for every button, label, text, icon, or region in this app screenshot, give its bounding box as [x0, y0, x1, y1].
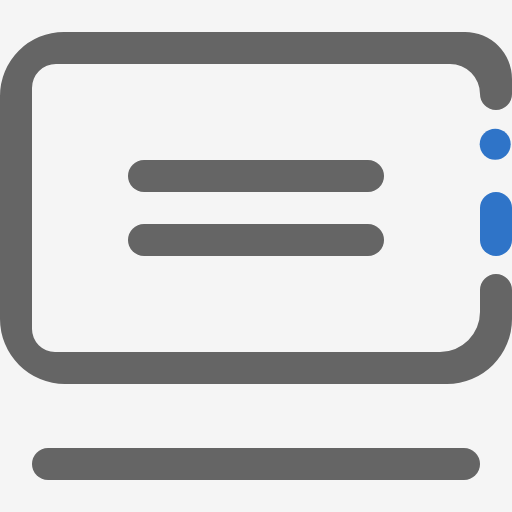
- button[interactable]: Tablet in landscape orientation: [0, 0, 512, 512]
